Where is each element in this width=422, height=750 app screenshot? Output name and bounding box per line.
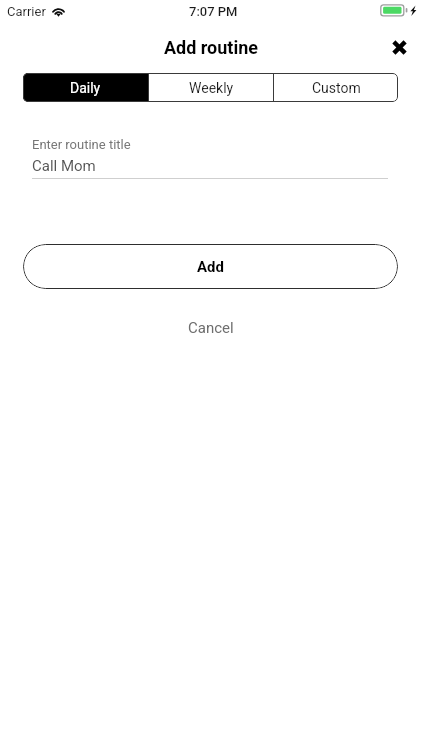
button[interactable]: Weekly bbox=[149, 73, 273, 102]
other: Wifi bbox=[51, 5, 66, 16]
staticText: 7:07 PM bbox=[189, 4, 238, 19]
staticText: Cancel bbox=[188, 319, 234, 337]
button[interactable]: Custom bbox=[274, 73, 398, 102]
staticText: Call Mom bbox=[32, 157, 96, 175]
other: Battery charging bbox=[380, 4, 418, 18]
button[interactable]: Add bbox=[23, 244, 398, 289]
button[interactable]: Cancel bbox=[174, 314, 248, 342]
button[interactable]: Daily bbox=[23, 73, 148, 102]
staticText: Custom bbox=[312, 80, 361, 96]
button[interactable]: Close bbox=[385, 33, 413, 61]
staticText: Weekly bbox=[189, 80, 234, 96]
staticText: Carrier bbox=[7, 4, 46, 19]
staticText: Add bbox=[197, 258, 224, 276]
staticText: Daily bbox=[70, 80, 101, 96]
staticText: Enter routine title bbox=[32, 137, 131, 152]
staticText: Add routine bbox=[0, 37, 422, 58]
